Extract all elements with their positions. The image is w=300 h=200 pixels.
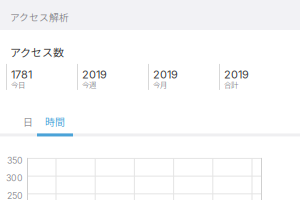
button[interactable]: 2019 [219,64,290,90]
staticText: 300 [6,173,23,183]
staticText: 1781 [11,68,32,81]
staticText: 350 [7,155,23,166]
staticText: 合計 [224,79,238,90]
button[interactable]: 1781 [6,64,77,90]
staticText: 今週 [82,79,96,90]
button[interactable]: 2019 [77,64,148,90]
staticText: 250 [7,190,23,200]
staticText: 時間 [45,114,65,129]
staticText: 日 [23,114,33,129]
staticText: 2019 [153,68,178,81]
staticText: 2019 [224,68,249,81]
staticText: アクセス解析 [10,10,69,24]
button[interactable]: 2019 [148,64,219,90]
button[interactable]: 時間 [37,115,73,136]
staticText: 今日 [11,79,25,90]
staticText: 今月 [153,79,167,90]
staticText: アクセス数 [10,44,64,60]
staticText: 2019 [82,68,107,81]
button[interactable]: 日 [21,115,35,136]
